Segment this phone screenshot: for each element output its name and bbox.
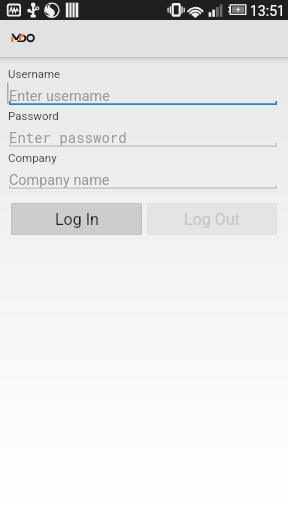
staticText: 13:51 bbox=[250, 3, 285, 19]
staticText: Company bbox=[8, 151, 57, 164]
staticText: Company name bbox=[9, 172, 110, 189]
staticText: Enter username bbox=[9, 88, 110, 105]
other: MDO bbox=[11, 33, 37, 45]
button[interactable]: Log In bbox=[11, 203, 142, 235]
staticText: Log Out bbox=[184, 210, 240, 229]
staticText: Password bbox=[8, 109, 59, 122]
staticText: Username bbox=[8, 67, 61, 80]
staticText: Log In bbox=[55, 210, 99, 229]
button[interactable]: Enter password bbox=[9, 123, 277, 148]
button[interactable]: Enter username bbox=[9, 81, 277, 106]
staticText: Enter password bbox=[9, 128, 127, 146]
button[interactable]: Company name bbox=[9, 165, 277, 190]
button[interactable]: Log Out bbox=[147, 203, 277, 235]
